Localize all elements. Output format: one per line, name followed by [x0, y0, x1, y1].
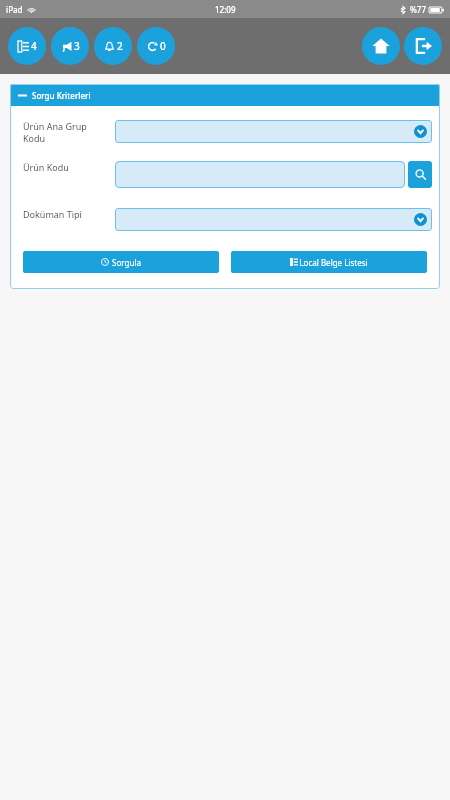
button[interactable]: Select option: [115, 208, 432, 231]
staticText: 0: [160, 39, 166, 53]
staticText: Sorgula: [112, 257, 141, 268]
button[interactable]: Notifications: [94, 27, 132, 65]
button[interactable]: Local Belge Listesi: [231, 251, 427, 273]
button[interactable]: Tasks: [8, 27, 46, 65]
staticText: 12:09: [215, 4, 236, 15]
button[interactable]: Sorgula: [23, 251, 219, 273]
staticText: iPad: [6, 4, 23, 15]
staticText: Ürün Ana Grup Kodu: [23, 120, 115, 145]
staticText: %77: [410, 4, 426, 15]
button[interactable]: Home: [362, 27, 400, 65]
button[interactable]: Sorgu Kriterleri: [10, 84, 440, 106]
button[interactable]: Announcements: [51, 27, 89, 65]
button[interactable]: Search: [408, 161, 432, 188]
button[interactable]: Select option: [115, 120, 432, 143]
staticText: 2: [117, 39, 123, 53]
staticText: Doküman Tipi: [23, 208, 115, 220]
staticText: Sorgu Kriterleri: [32, 90, 91, 101]
staticText: 3: [74, 39, 80, 53]
staticText: Local Belge Listesi: [299, 257, 368, 268]
button[interactable]: Logout: [404, 27, 442, 65]
staticText: 4: [31, 39, 37, 53]
staticText: Ürün Kodu: [23, 161, 115, 173]
button[interactable]: Sync: [137, 27, 175, 65]
button[interactable]: Ürün Kodu input: [115, 161, 405, 188]
